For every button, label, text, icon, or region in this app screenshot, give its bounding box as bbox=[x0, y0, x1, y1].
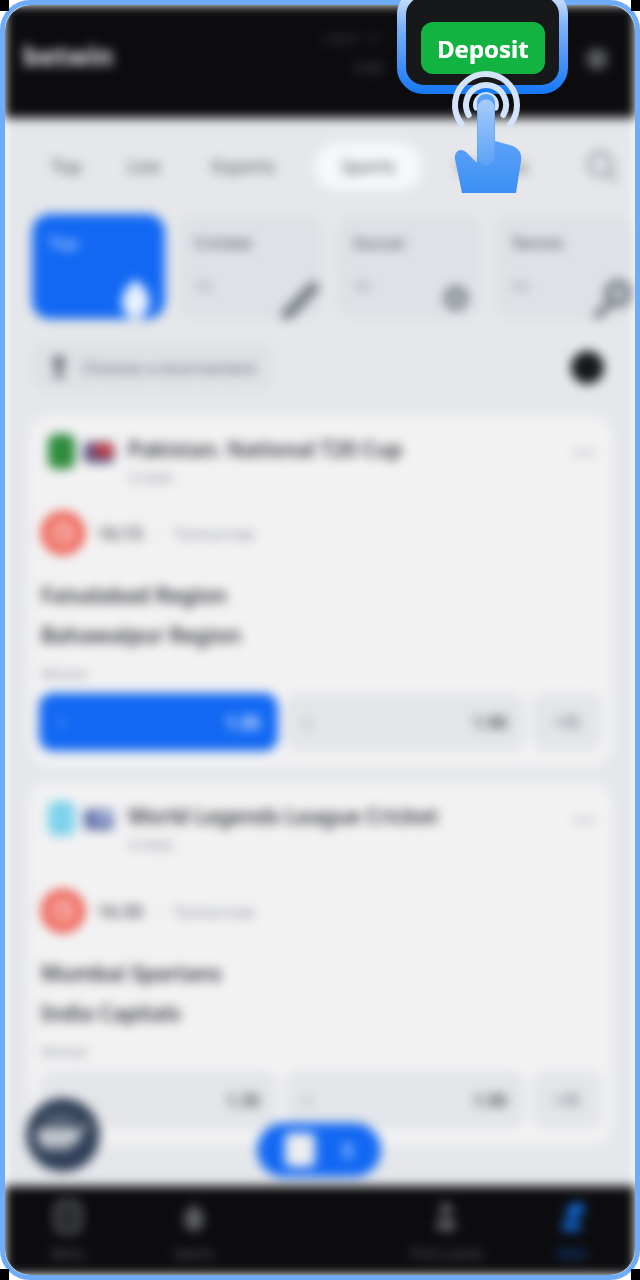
staticText: 1 bbox=[341, 1135, 354, 1165]
button[interactable]: Sports bbox=[315, 143, 422, 190]
staticText: Tomorrow bbox=[173, 522, 255, 545]
button[interactable]: Live bbox=[123, 146, 165, 187]
staticText: Matches bbox=[457, 154, 529, 179]
button[interactable]: Cricket bbox=[178, 214, 323, 319]
button[interactable]: Menu bbox=[5, 1186, 131, 1275]
button[interactable]: Top bbox=[32, 214, 165, 319]
button[interactable]: Slots bbox=[509, 1186, 635, 1275]
staticText: Menu bbox=[50, 1244, 86, 1262]
button[interactable]: Deposit bbox=[421, 22, 545, 74]
staticText: 16:30 bbox=[97, 899, 144, 924]
button[interactable]: Tennis bbox=[494, 214, 635, 319]
staticText: Cricket bbox=[128, 468, 174, 487]
staticText: Live bbox=[127, 154, 161, 179]
staticText: Sports bbox=[341, 154, 396, 179]
button[interactable]: Matches bbox=[453, 146, 533, 187]
button[interactable]: Soccer bbox=[336, 214, 481, 319]
staticText: Pakistan. National T20 Cup bbox=[128, 435, 403, 464]
button[interactable]: Esports bbox=[208, 146, 280, 187]
staticText: Top bbox=[51, 154, 82, 179]
staticText: 1.35 bbox=[226, 711, 260, 734]
button[interactable]: Search bbox=[580, 144, 624, 188]
staticText: Find a party bbox=[410, 1244, 483, 1262]
button[interactable]: More options bbox=[562, 798, 606, 842]
button[interactable]: More options bbox=[562, 431, 606, 475]
button[interactable]: Sports bbox=[131, 1186, 257, 1275]
button[interactable]: +35 bbox=[532, 1071, 602, 1129]
staticText: Deposit bbox=[437, 32, 529, 65]
staticText: 76 bbox=[353, 276, 371, 296]
staticText: +35 bbox=[553, 711, 581, 733]
staticText: 16:15 bbox=[97, 521, 144, 546]
button[interactable]: Profile menu bbox=[577, 39, 617, 79]
button[interactable]: 1 bbox=[39, 1071, 278, 1129]
button[interactable]: 2 bbox=[285, 1071, 525, 1129]
staticText: Esports bbox=[212, 154, 276, 179]
staticText: 1.35 bbox=[226, 1089, 260, 1112]
staticText: Cricket bbox=[128, 835, 174, 854]
staticText: Bahawalpur Region bbox=[41, 621, 241, 650]
staticText: Cricket bbox=[195, 231, 252, 254]
staticText: betwin bbox=[23, 38, 114, 73]
staticText: Faisalabad Region bbox=[41, 581, 227, 610]
staticText: Winner bbox=[41, 664, 89, 683]
button[interactable]: Top bbox=[47, 146, 86, 187]
staticText: Slots bbox=[557, 1244, 587, 1262]
staticText: 76 bbox=[195, 276, 213, 296]
staticText: 1.90 bbox=[473, 1089, 507, 1112]
staticText: Mumbai Spartans bbox=[41, 959, 222, 988]
staticText: Winner bbox=[41, 1042, 89, 1061]
button[interactable]: Choose a tournament bbox=[32, 343, 273, 391]
staticText: Sports bbox=[174, 1244, 214, 1262]
button[interactable]: 2 bbox=[285, 693, 525, 751]
button[interactable]: Bet slip bbox=[257, 1123, 381, 1177]
staticText: Soccer bbox=[353, 231, 407, 254]
button[interactable]: 1 bbox=[39, 693, 278, 751]
staticText: 1 bbox=[57, 1090, 66, 1110]
button[interactable]: Filters bbox=[563, 343, 611, 391]
staticText: Top bbox=[49, 231, 79, 254]
staticText: World Legends League Cricket bbox=[128, 802, 439, 831]
button[interactable]: Support chat bbox=[26, 1098, 100, 1172]
button[interactable]: Find a party bbox=[383, 1186, 509, 1275]
staticText: Choose a tournament bbox=[82, 356, 257, 379]
staticText: Tomorrow bbox=[173, 900, 255, 923]
staticText: 0.00 bbox=[355, 58, 383, 77]
staticText: 1.90 bbox=[473, 711, 507, 734]
button[interactable]: +35 bbox=[532, 693, 602, 751]
staticText: Tennis bbox=[511, 231, 564, 254]
staticText: India Capitals bbox=[41, 999, 181, 1028]
staticText: 76 bbox=[511, 276, 529, 296]
staticText: +35 bbox=[553, 1089, 581, 1111]
